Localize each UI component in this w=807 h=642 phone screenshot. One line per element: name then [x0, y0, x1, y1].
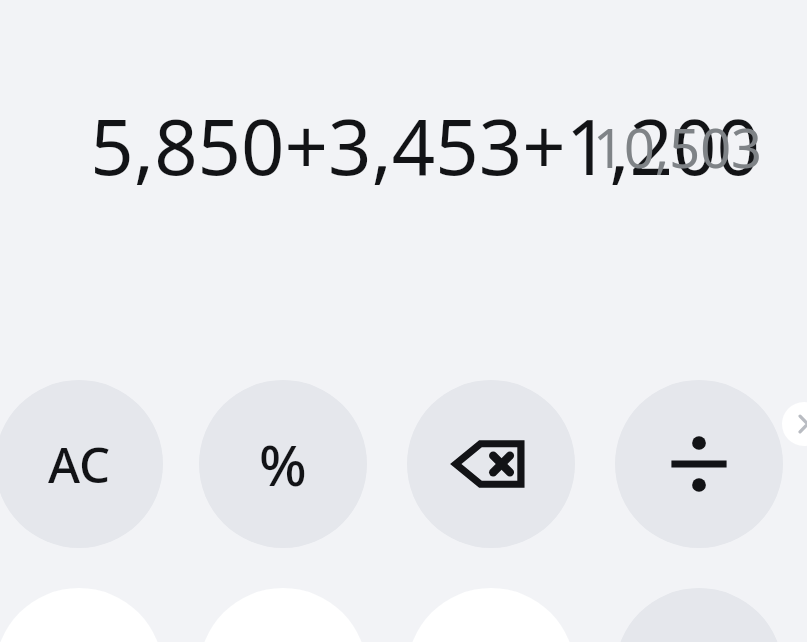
staticText: 5,850+3,453+1,200: [40, 94, 760, 186]
button[interactable]: Seven: [0, 588, 163, 642]
staticText: %: [259, 426, 307, 502]
button[interactable]: Multiply: [615, 588, 783, 642]
button[interactable]: Nine: [407, 588, 575, 642]
staticText: 10,503: [262, 110, 762, 176]
button[interactable]: More operations: [782, 402, 807, 446]
button[interactable]: Backspace: [407, 380, 575, 548]
button[interactable]: Percent: [199, 380, 367, 548]
button[interactable]: Divide: [615, 380, 783, 548]
button[interactable]: All clear: [0, 380, 163, 548]
button[interactable]: Eight: [199, 588, 367, 642]
staticText: AC: [48, 431, 111, 498]
